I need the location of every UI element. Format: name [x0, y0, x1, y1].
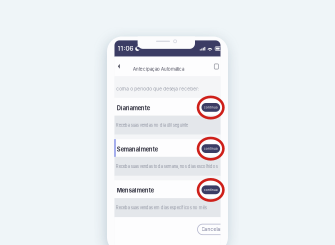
staticText: Antecipação Automática [133, 66, 184, 72]
staticText: Receba suas vendas toda semana, nos dias… [116, 164, 218, 169]
staticText: Semanalmente [117, 146, 158, 153]
button[interactable]: Mensalmente [114, 180, 220, 198]
staticText: colha o período que deseja receber: [116, 86, 199, 92]
staticText: Diariamente [117, 105, 150, 111]
button[interactable]: Voltar [115, 61, 123, 72]
staticText: 11:06 [117, 45, 133, 52]
staticText: Receba suas vendas no dia útil seguinte [116, 123, 188, 128]
staticText: Cancelar [201, 227, 222, 232]
staticText: contínua [204, 188, 218, 192]
staticText: Mensalmente [117, 187, 154, 194]
staticText: contínua [204, 147, 218, 151]
staticText: contínua [204, 105, 218, 109]
staticText: Receba suas vendas em dias específicos n… [116, 205, 207, 210]
button[interactable]: Diariamente [114, 98, 220, 116]
button[interactable]: Ajuda [212, 62, 220, 71]
button[interactable]: Semanalmente [114, 139, 220, 157]
button[interactable]: Cancelar [197, 224, 226, 235]
